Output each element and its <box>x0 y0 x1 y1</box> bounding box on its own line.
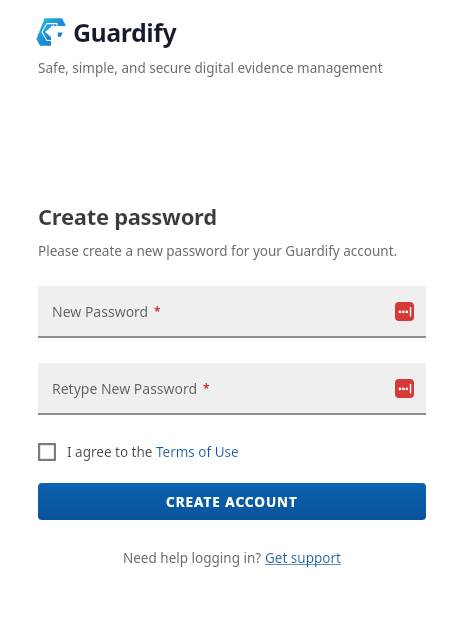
button[interactable]: Retype New Password <box>38 363 426 413</box>
button[interactable]: Fill password <box>395 302 414 321</box>
staticText: Get support <box>265 549 341 567</box>
staticText: Safe, simple, and secure digital evidenc… <box>38 59 383 77</box>
staticText: New Password <box>52 302 149 321</box>
button[interactable]: Fill password <box>395 379 414 398</box>
staticText: Retype New Password <box>52 379 198 398</box>
button[interactable]: I agree to the <box>36 438 241 466</box>
staticText: * <box>154 303 161 319</box>
staticText: * <box>203 380 210 396</box>
staticText: Terms of Use <box>156 443 239 461</box>
staticText: Need help logging in? <box>123 549 265 567</box>
staticText: Please create a new password for your Gu… <box>38 242 398 260</box>
button[interactable]: New Password <box>38 286 426 336</box>
staticText: Guardify <box>73 15 177 49</box>
staticText: I agree to the <box>67 443 156 461</box>
button[interactable]: Get support <box>265 549 341 567</box>
button[interactable]: Terms of Use <box>156 443 239 461</box>
staticText: Create password <box>38 201 217 231</box>
button[interactable]: CREATE ACCOUNT <box>38 483 426 520</box>
staticText: CREATE ACCOUNT <box>166 493 298 511</box>
